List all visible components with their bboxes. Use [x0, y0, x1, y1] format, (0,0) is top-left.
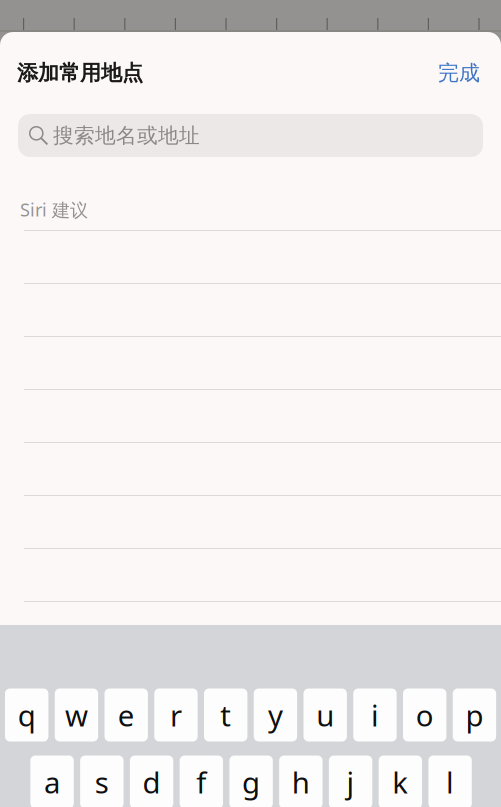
button[interactable]: [0, 548, 501, 601]
staticText: a: [44, 762, 60, 802]
button[interactable]: p: [453, 688, 496, 741]
button[interactable]: q: [5, 688, 48, 741]
staticText: g: [242, 762, 260, 802]
staticText: f: [196, 762, 206, 802]
button[interactable]: h: [279, 755, 322, 807]
button[interactable]: [0, 495, 501, 548]
button[interactable]: 搜索地名或地址: [18, 114, 483, 157]
staticText: s: [95, 762, 109, 802]
staticText: 添加常用地点: [17, 60, 143, 86]
staticText: w: [65, 695, 88, 735]
button[interactable]: g: [229, 755, 273, 807]
button[interactable]: j: [329, 755, 372, 807]
staticText: h: [292, 762, 310, 802]
staticText: 搜索地名或地址: [53, 122, 200, 148]
button[interactable]: f: [180, 755, 223, 807]
button[interactable]: i: [353, 688, 397, 741]
button[interactable]: [0, 336, 501, 389]
staticText: u: [316, 695, 334, 735]
staticText: e: [118, 695, 135, 735]
button[interactable]: u: [303, 688, 347, 741]
button[interactable]: [0, 389, 501, 442]
staticText: j: [347, 762, 355, 802]
button[interactable]: y: [254, 688, 297, 741]
button[interactable]: [0, 283, 501, 336]
button[interactable]: a: [30, 755, 74, 807]
button[interactable]: [0, 442, 501, 495]
button[interactable]: 完成: [422, 55, 480, 91]
staticText: p: [465, 695, 483, 735]
staticText: d: [143, 762, 161, 802]
staticText: l: [446, 762, 454, 802]
button[interactable]: [0, 230, 501, 283]
button[interactable]: k: [379, 755, 422, 807]
staticText: 完成: [438, 60, 480, 86]
staticText: Siri 建议: [20, 197, 88, 222]
button[interactable]: s: [80, 755, 123, 807]
staticText: k: [392, 762, 408, 802]
staticText: t: [220, 695, 231, 735]
staticText: i: [371, 695, 379, 735]
button[interactable]: w: [55, 688, 98, 741]
button[interactable]: [0, 601, 501, 625]
button[interactable]: t: [204, 688, 247, 741]
button[interactable]: l: [428, 755, 472, 807]
button[interactable]: d: [130, 755, 173, 807]
button[interactable]: e: [104, 688, 148, 741]
staticText: r: [170, 695, 182, 735]
staticText: q: [18, 695, 36, 735]
button[interactable]: r: [154, 688, 198, 741]
staticText: y: [268, 695, 283, 735]
staticText: o: [416, 695, 434, 735]
button[interactable]: o: [403, 688, 446, 741]
